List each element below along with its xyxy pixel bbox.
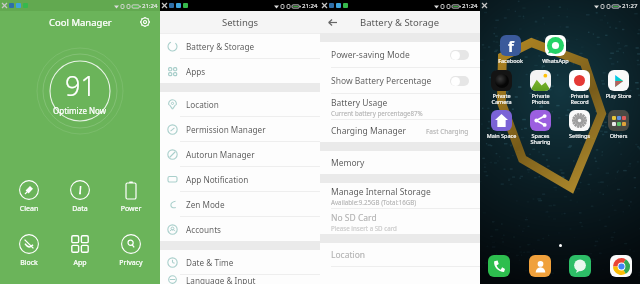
staticText: Apps	[186, 66, 206, 77]
staticText: Permission Manager	[186, 124, 266, 135]
staticText: Zen Mode	[186, 199, 225, 210]
button[interactable]: Power	[109, 178, 153, 216]
staticText: App	[58, 258, 102, 268]
staticText: Language & Input	[186, 275, 256, 284]
staticText: Fast Charging	[426, 127, 469, 136]
staticText: Play Store	[602, 92, 635, 99]
button[interactable]: Back	[325, 15, 339, 29]
button[interactable]: Main Space	[485, 110, 518, 139]
staticText: 21:24	[462, 2, 478, 10]
button[interactable]: Private Photos	[524, 70, 557, 106]
staticText: 91	[65, 67, 96, 104]
button[interactable]: Location	[160, 92, 320, 116]
button[interactable]: Power-saving Mode	[320, 42, 480, 67]
staticText: Optimize Now	[53, 105, 107, 116]
button[interactable]: f	[494, 35, 527, 64]
staticText: Settings	[563, 132, 596, 139]
staticText: Charging Manager	[331, 125, 426, 137]
button[interactable]: Play Store	[602, 70, 635, 99]
staticText: 21:24	[302, 2, 318, 10]
button[interactable]: Zen Mode	[160, 192, 320, 216]
staticText: App Notification	[186, 174, 249, 185]
button[interactable]: WhatsApp	[539, 35, 572, 64]
button[interactable]: Block	[7, 232, 51, 270]
button[interactable]: Apps	[160, 59, 320, 83]
staticText: Location	[186, 99, 219, 110]
staticText: Power-saving Mode	[331, 49, 450, 61]
button[interactable]: Battery & Storage	[160, 34, 320, 58]
staticText: Spaces Sharing	[524, 132, 557, 146]
staticText: Accounts	[186, 224, 222, 235]
button[interactable]: Charging Manager	[320, 120, 480, 142]
button[interactable]: Accounts	[160, 217, 320, 241]
staticText: Clean	[7, 204, 51, 214]
button[interactable]: Battery Usage	[320, 94, 480, 119]
staticText: Main Space	[485, 132, 518, 139]
staticText: Location	[331, 249, 366, 261]
button[interactable]: Chrome	[610, 255, 632, 277]
button[interactable]: Privacy	[109, 232, 153, 270]
button[interactable]: Permission Manager	[160, 117, 320, 141]
staticText: Battery & Storage	[360, 16, 440, 29]
button[interactable]: Spaces Sharing	[524, 110, 557, 146]
staticText: Memory	[331, 157, 365, 169]
staticText: Private Photos	[524, 92, 557, 106]
staticText: Please insert a SD card	[331, 224, 397, 232]
staticText: f	[508, 36, 514, 56]
button[interactable]: Private Record	[563, 70, 596, 106]
button[interactable]: Location	[320, 243, 480, 266]
staticText: Current battery percentage87%	[331, 109, 423, 117]
button[interactable]: Autorun Manager	[160, 142, 320, 166]
button[interactable]: Show Battery Percentage	[320, 68, 480, 93]
staticText: Available:9.25GB (Total:16GB)	[331, 198, 417, 206]
staticText: No SD Card	[331, 212, 377, 224]
button[interactable]: No SD Card	[320, 209, 480, 234]
staticText: WhatsApp	[539, 57, 572, 64]
staticText: Private Camera	[485, 92, 518, 106]
button[interactable]: App Notification	[160, 167, 320, 191]
staticText: Private Record	[563, 92, 596, 106]
staticText: Cool Manager	[49, 16, 112, 29]
staticText: Facebook	[494, 57, 527, 64]
staticText: 21:24	[142, 2, 158, 10]
staticText: 21:27	[622, 2, 638, 10]
staticText: Others	[602, 132, 635, 139]
staticText: Block	[7, 258, 51, 268]
button[interactable]: Settings	[138, 15, 152, 29]
button[interactable]: Manage Internal Storage	[320, 183, 480, 208]
button[interactable]: Messages	[569, 255, 591, 277]
button[interactable]: Date & Time	[160, 250, 320, 274]
button[interactable]: Settings	[563, 110, 596, 139]
button[interactable]: Language & Input	[160, 275, 320, 284]
button[interactable]: Private Camera	[485, 70, 518, 106]
button[interactable]: 91	[36, 47, 124, 135]
staticText: Power	[109, 204, 153, 214]
staticText: Date & Time	[186, 257, 234, 268]
staticText: Settings	[222, 16, 259, 29]
button[interactable]: Clean	[7, 178, 51, 216]
button[interactable]: App	[58, 232, 102, 270]
button[interactable]: Others	[602, 110, 635, 139]
button[interactable]: Data	[58, 178, 102, 216]
button[interactable]: Phone	[488, 255, 510, 277]
button[interactable]: Memory	[320, 151, 480, 174]
staticText: Manage Internal Storage	[331, 186, 431, 198]
staticText: Autorun Manager	[186, 149, 255, 160]
staticText: Battery & Storage	[186, 41, 255, 52]
staticText: Data	[58, 204, 102, 214]
staticText: Show Battery Percentage	[331, 75, 450, 87]
button[interactable]: Contacts	[529, 255, 551, 277]
staticText: Battery Usage	[331, 97, 388, 109]
staticText: Privacy	[109, 258, 153, 268]
